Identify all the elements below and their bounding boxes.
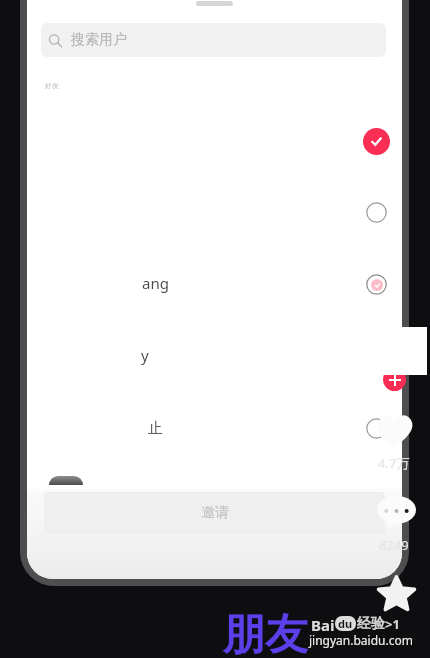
staticText: 经验 — [357, 615, 385, 632]
button[interactable]: Like — [374, 413, 416, 449]
button[interactable]: Select — [366, 418, 387, 439]
button[interactable]: Selected — [363, 128, 390, 155]
staticText: 朋友 — [222, 608, 308, 658]
button[interactable]: Follow — [383, 368, 406, 391]
button[interactable]: Comment — [377, 496, 416, 530]
staticText: y — [141, 345, 149, 365]
button[interactable]: Invited — [366, 274, 387, 295]
staticText: 8249 — [379, 536, 409, 554]
staticText: 止 — [148, 419, 163, 438]
staticText: 好友 — [45, 81, 59, 90]
staticText: 搜索用户 — [71, 31, 127, 49]
staticText: Bai — [311, 615, 335, 632]
staticText: >1 — [385, 615, 400, 632]
staticText: 4.7万 — [378, 454, 410, 472]
button[interactable]: Favorite — [377, 575, 416, 612]
staticText: ang — [142, 273, 169, 293]
staticText: 邀请 — [201, 504, 229, 522]
button[interactable]: 邀请 — [44, 492, 385, 534]
button[interactable]: Select — [366, 202, 387, 223]
staticText: du — [338, 616, 353, 631]
staticText: jingyan.baidu.com — [309, 632, 413, 648]
button[interactable]: 搜索用户 — [41, 23, 386, 57]
